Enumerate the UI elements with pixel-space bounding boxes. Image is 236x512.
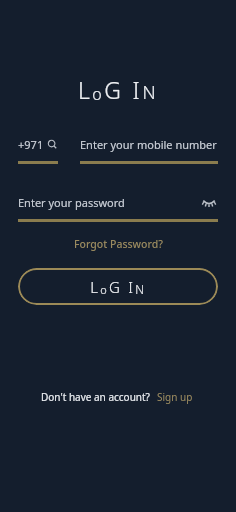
staticText: Forgot Password? (74, 237, 163, 251)
staticText: Enter your mobile number (80, 137, 217, 152)
button[interactable]: Forgot Password? (68, 235, 169, 253)
staticText: Enter your password (18, 195, 125, 210)
button[interactable]: Enter your mobile number (80, 135, 218, 164)
staticText: N (142, 80, 158, 105)
staticText: Don't have an account? (41, 390, 150, 404)
staticText: o (100, 282, 109, 297)
staticText: I (132, 74, 142, 105)
staticText: L (90, 277, 100, 297)
button[interactable]: Show password (200, 193, 218, 211)
button[interactable]: L (18, 268, 218, 305)
staticText: I (128, 277, 135, 297)
staticText: N (135, 281, 146, 297)
staticText: +971 (18, 137, 44, 152)
staticText: L (78, 74, 92, 105)
button[interactable]: Enter your password (18, 193, 218, 222)
staticText: o (92, 83, 104, 105)
staticText: G (104, 74, 123, 105)
button[interactable]: Select country code (18, 135, 58, 164)
staticText: G (109, 277, 122, 297)
staticText: Sign up (157, 390, 193, 404)
button[interactable]: Sign up (155, 388, 195, 406)
